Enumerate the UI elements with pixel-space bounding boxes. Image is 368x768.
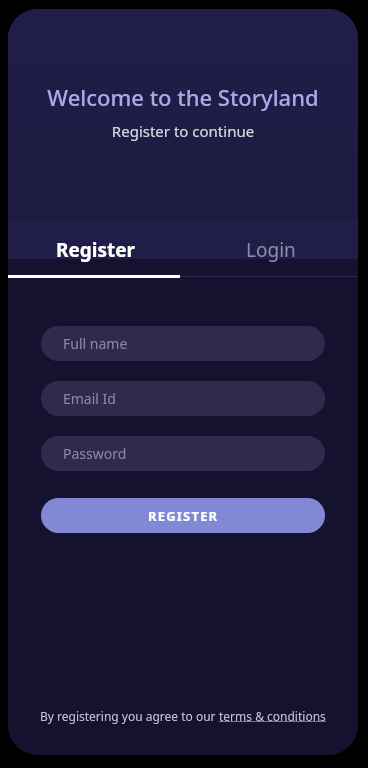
button[interactable]: terms & conditions <box>219 708 326 724</box>
button[interactable]: Full name <box>41 326 325 361</box>
staticText: REGISTER <box>148 507 219 525</box>
staticText: Password <box>63 444 127 463</box>
staticText: Welcome to the Storyland <box>8 82 358 112</box>
staticText: Email Id <box>63 389 116 408</box>
button[interactable]: REGISTER <box>41 498 325 533</box>
staticText: Register to continue <box>8 121 358 141</box>
button[interactable]: Login <box>183 233 358 267</box>
button[interactable]: Register <box>8 233 183 267</box>
staticText: terms & conditions <box>219 708 326 724</box>
staticText: Login <box>246 237 296 263</box>
button[interactable]: Password <box>41 436 325 471</box>
button[interactable]: Email Id <box>41 381 325 416</box>
staticText: Register <box>56 237 136 263</box>
staticText: Full name <box>63 334 128 353</box>
staticText: By registering you agree to our <box>40 708 219 724</box>
